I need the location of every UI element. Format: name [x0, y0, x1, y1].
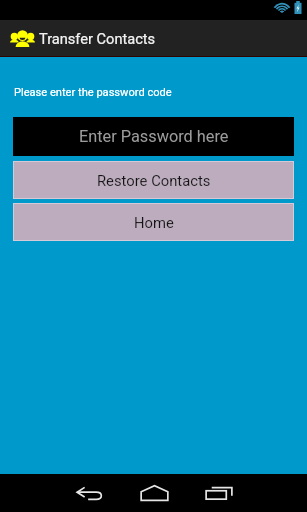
staticText: Home	[134, 214, 174, 231]
staticText: Restore Contacts	[97, 172, 211, 189]
button[interactable]: Back	[57, 474, 121, 512]
button[interactable]: Home	[122, 474, 186, 512]
button[interactable]: Recent apps	[187, 474, 251, 512]
staticText: Please enter the password code	[14, 86, 172, 99]
button[interactable]: Enter Password here	[13, 117, 294, 156]
staticText: Transfer Contacts	[39, 30, 156, 47]
button[interactable]: Home	[13, 203, 294, 241]
button[interactable]: Restore Contacts	[13, 161, 294, 199]
staticText: Enter Password here	[79, 127, 229, 146]
